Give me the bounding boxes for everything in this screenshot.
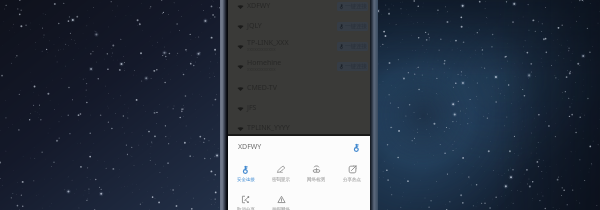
staticText: 密码显示 <box>272 177 290 183</box>
button[interactable]: Homehine <box>228 56 370 76</box>
button[interactable]: 安全连接 <box>228 158 263 188</box>
staticText: 分享热点 <box>343 177 361 183</box>
button[interactable]: 一键连接 <box>337 22 368 31</box>
staticText: 安全连接 <box>237 177 255 183</box>
staticText: JQLY <box>247 21 262 31</box>
button[interactable]: 举报网络 <box>263 188 299 210</box>
staticText: JFS <box>247 103 257 113</box>
button[interactable]: 分享热点 <box>334 158 370 188</box>
button[interactable]: 网络检测 <box>298 158 334 188</box>
staticText: CMED-TV <box>247 83 277 93</box>
other: Key <box>352 143 361 152</box>
button[interactable]: JQLY <box>228 16 370 36</box>
staticText: 网络检测 <box>307 177 325 183</box>
button[interactable]: TPLINK_YYYY <box>228 118 370 138</box>
staticText: XDFWY <box>247 1 271 11</box>
staticText: XDFWY <box>238 142 262 152</box>
button[interactable]: 一键连接 <box>337 62 368 71</box>
button[interactable]: XDFWY <box>228 0 370 16</box>
staticText: 举报网络 <box>272 207 290 210</box>
button[interactable]: TP-LINK_XXX <box>228 36 370 56</box>
button[interactable]: 一键连接 <box>337 42 368 51</box>
button[interactable]: 密码显示 <box>263 158 298 188</box>
staticText: TPLINK_YYYY <box>247 123 290 133</box>
staticText: TP-LINK_XXX <box>247 38 289 48</box>
button[interactable]: XDFWY <box>228 136 370 158</box>
button[interactable]: 取消分享 <box>228 188 263 210</box>
staticText: 取消分享 <box>237 207 255 210</box>
staticText: Homehine <box>247 58 282 68</box>
button[interactable]: 一键连接 <box>337 2 368 11</box>
